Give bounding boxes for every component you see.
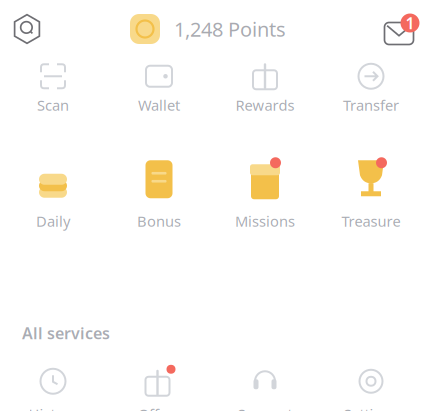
staticText: Treasure xyxy=(341,211,400,231)
button[interactable]: Settings xyxy=(318,363,424,411)
button[interactable]: Missions xyxy=(212,155,318,231)
staticText: Bonus xyxy=(137,211,181,231)
button[interactable]: Support xyxy=(212,363,318,411)
staticText: Offers xyxy=(138,404,180,411)
staticText: Support xyxy=(237,404,292,411)
button[interactable]: Treasure xyxy=(318,155,424,231)
staticText: 1 xyxy=(405,12,414,34)
staticText: 1,248 Points xyxy=(174,16,286,42)
button[interactable]: Search xyxy=(0,11,54,47)
staticText: History xyxy=(28,404,77,411)
staticText: All services xyxy=(22,322,110,344)
button[interactable]: Daily xyxy=(0,155,106,231)
staticText: Missions xyxy=(235,211,295,231)
staticText: Transfer xyxy=(343,95,399,115)
button[interactable]: History xyxy=(0,363,106,411)
staticText: Scan xyxy=(37,95,69,115)
button[interactable]: Wallet xyxy=(106,61,212,115)
button[interactable]: Bonus xyxy=(106,155,212,231)
staticText: Settings xyxy=(343,404,398,411)
staticText: Rewards xyxy=(235,95,294,115)
staticText: Daily xyxy=(36,211,70,231)
staticText: Wallet xyxy=(138,95,180,115)
button[interactable]: Transfer xyxy=(318,61,424,115)
button[interactable]: Rewards xyxy=(212,61,318,115)
button[interactable]: Offers xyxy=(106,363,212,411)
button[interactable]: Messages xyxy=(380,11,424,47)
button[interactable]: Scan xyxy=(0,61,106,115)
